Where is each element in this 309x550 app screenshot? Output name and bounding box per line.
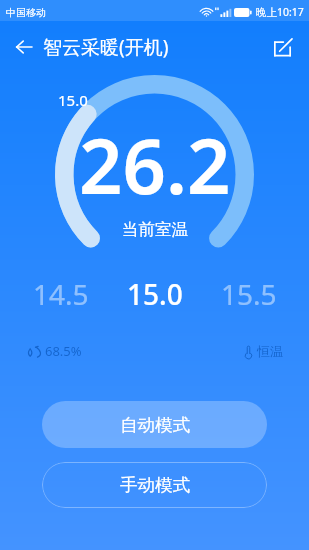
staticText: 手动模式 — [120, 474, 190, 496]
staticText: 15.0 — [127, 275, 183, 313]
button[interactable]: 14.5 — [13, 275, 108, 313]
staticText: 中国移动 — [6, 6, 46, 19]
staticText: 15.0 — [58, 90, 88, 110]
button[interactable]: 15.0 — [108, 275, 202, 313]
button[interactable]: 恒温 — [244, 343, 283, 359]
staticText: 恒温 — [257, 343, 283, 359]
staticText: 68.5% — [45, 342, 82, 360]
button[interactable]: Edit — [269, 34, 295, 60]
staticText: 自动模式 — [120, 414, 190, 436]
staticText: 智云采暖(开机) — [43, 34, 169, 60]
staticText: 14.5 — [33, 275, 89, 313]
button[interactable]: 68.5% — [26, 342, 82, 360]
button[interactable]: 自动模式 — [42, 401, 267, 448]
button[interactable]: 手动模式 — [42, 462, 267, 508]
staticText: 晚上10:17 — [256, 5, 304, 19]
staticText: 当前室温 — [122, 219, 188, 240]
staticText: 15.5 — [221, 275, 277, 313]
staticText: 26.2 — [79, 113, 231, 217]
button[interactable]: Back — [0, 24, 47, 70]
button[interactable]: 15.5 — [202, 275, 296, 313]
